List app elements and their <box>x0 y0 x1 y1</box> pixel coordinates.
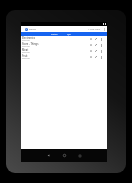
button[interactable]: Edit item <box>89 48 93 54</box>
staticText: Descript <box>22 51 30 54</box>
button[interactable]: Mark done <box>94 36 98 42</box>
staticText: Store - Things <box>22 42 39 45</box>
button[interactable]: Meat <box>21 48 107 54</box>
staticText: Meat <box>22 48 29 51</box>
button[interactable]: More options <box>99 48 103 54</box>
staticText: Descript <box>22 39 30 42</box>
staticText: + ADD ITEM <box>88 28 101 31</box>
button[interactable]: Store - Things <box>21 42 107 48</box>
button[interactable]: Mark done <box>94 42 98 48</box>
button[interactable]: More options <box>99 42 103 48</box>
staticText: ITEMS <box>51 33 58 36</box>
button[interactable]: Fruit <box>21 54 107 60</box>
button[interactable]: Mark done <box>94 48 98 54</box>
staticText: Electronics <box>22 36 35 39</box>
button[interactable]: Electronics <box>21 36 107 42</box>
button[interactable]: More options <box>103 27 105 31</box>
button[interactable]: Edit item <box>89 42 93 48</box>
staticText: Descript <box>22 45 30 48</box>
button[interactable]: Edit item <box>89 54 93 60</box>
button[interactable]: + ADD ITEM <box>87 28 102 31</box>
button[interactable]: Edit item <box>89 36 93 42</box>
button[interactable]: More options <box>99 54 103 60</box>
staticText: Fruit <box>22 54 28 57</box>
staticText: Grocery <box>29 28 36 31</box>
staticText: Descript <box>22 57 30 60</box>
staticText: QTY <box>67 33 72 36</box>
button[interactable]: More options <box>99 36 103 42</box>
button[interactable]: Mark done <box>94 54 98 60</box>
